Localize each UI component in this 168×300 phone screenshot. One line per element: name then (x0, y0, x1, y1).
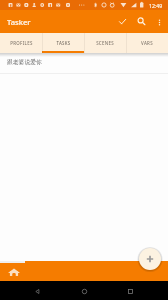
button[interactable]: Recents (122, 283, 138, 299)
button[interactable]: Back (29, 283, 45, 299)
button[interactable]: Home (76, 283, 92, 299)
button[interactable]: 跟老婆说爱你 (0, 53, 168, 73)
button[interactable]: Add task (139, 248, 161, 270)
button[interactable]: TASKS (42, 33, 84, 53)
button[interactable]: PROFILES (0, 33, 42, 53)
staticText: 12:49 (149, 2, 163, 9)
staticText: TASKS (56, 40, 71, 46)
staticText: 跟老婆说爱你 (7, 58, 42, 65)
button[interactable]: Apply (114, 13, 131, 30)
button[interactable]: VARS (126, 33, 168, 53)
button[interactable]: More options (151, 14, 167, 30)
staticText: Tasker (7, 17, 31, 27)
staticText: VARS (141, 40, 153, 46)
staticText: SCENES (96, 40, 114, 46)
button[interactable]: Search (133, 13, 150, 30)
button[interactable]: Home (7, 265, 20, 278)
button[interactable]: SCENES (84, 33, 126, 53)
staticText: PROFILES (10, 40, 33, 46)
